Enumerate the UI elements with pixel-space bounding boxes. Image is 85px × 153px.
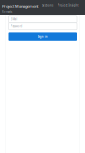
staticText: Project Management: [2, 3, 38, 9]
button[interactable]: Project Insight: [57, 4, 78, 7]
staticText: Remarks: [2, 10, 12, 14]
staticText: E-Mail: [10, 17, 17, 21]
staticText: Password: [10, 24, 22, 28]
button[interactable]: Password: [8, 23, 77, 30]
staticText: Project Insight: [57, 4, 78, 7]
button[interactable]: Sections: [42, 4, 53, 7]
staticText: Sections: [42, 4, 53, 7]
staticText: Sign in: [38, 35, 48, 38]
button[interactable]: E-Mail: [8, 16, 77, 23]
button[interactable]: Sign in: [8, 32, 77, 41]
